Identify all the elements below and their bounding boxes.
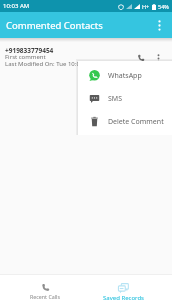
staticText: Commented Contacts [6, 19, 103, 32]
staticText: +919833779454 [5, 46, 54, 55]
staticText: First comment [5, 53, 46, 61]
button[interactable]: Saved Records [103, 282, 144, 305]
button[interactable]: Contact options [151, 43, 165, 67]
staticText: Saved Records [103, 294, 144, 302]
button[interactable]: Recent Calls [30, 282, 60, 305]
staticText: 10:03 AM [3, 2, 30, 10]
button[interactable]: More options [146, 12, 172, 38]
button[interactable]: Delete Comment [78, 110, 172, 133]
staticText: Delete Comment [108, 117, 164, 127]
button[interactable]: SMS [78, 87, 172, 110]
staticText: 54% [158, 3, 169, 10]
staticText: SMS [108, 94, 123, 104]
staticText: Last Modified On: Tue 10:02 AM [5, 60, 95, 68]
button[interactable]: +919833779454 [0, 38, 172, 70]
staticText: H+ [142, 3, 150, 10]
staticText: Recent Calls [30, 293, 60, 300]
button[interactable]: WhatsApp [78, 64, 172, 87]
button[interactable]: Call contact [131, 43, 151, 67]
staticText: WhatsApp [108, 71, 142, 81]
